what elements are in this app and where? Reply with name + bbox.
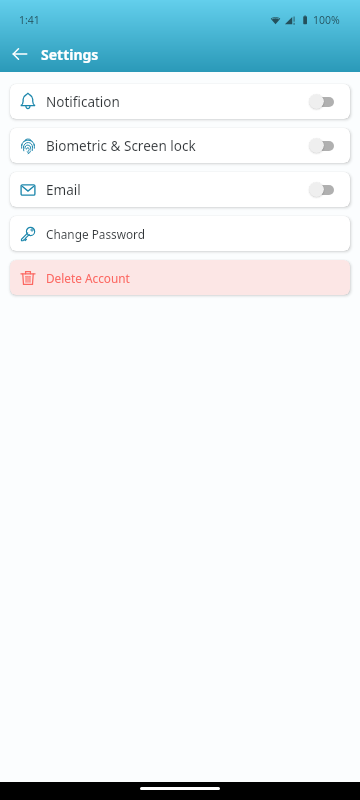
staticText: Change Password (46, 226, 145, 242)
button[interactable]: Email (10, 172, 350, 207)
staticText: Notification (46, 93, 120, 111)
button[interactable]: Notification (10, 84, 350, 119)
button[interactable]: Change Password (10, 216, 350, 251)
staticText: Email (46, 181, 81, 199)
staticText: Biometric & Screen lock (46, 137, 196, 155)
button[interactable]: Delete Account (10, 260, 350, 295)
button[interactable]: Biometric & Screen lock (10, 128, 350, 163)
staticText: 100% (313, 13, 340, 27)
button[interactable]: Back (0, 34, 40, 74)
staticText: 1:41 (19, 13, 40, 27)
staticText: Delete Account (46, 270, 130, 286)
staticText: Settings (41, 45, 99, 64)
